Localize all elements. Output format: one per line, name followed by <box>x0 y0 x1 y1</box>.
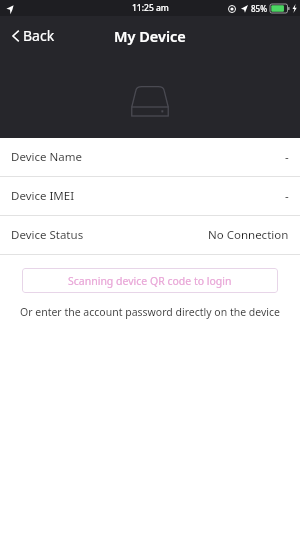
staticText: Back <box>23 26 55 45</box>
button[interactable]: Scanning device QR code to login <box>22 268 278 293</box>
button[interactable]: Device Status <box>0 216 300 254</box>
staticText: My Device <box>114 26 186 46</box>
button[interactable]: Back <box>6 22 61 49</box>
button[interactable]: Device Name <box>0 138 300 176</box>
staticText: No Connection <box>208 227 289 243</box>
staticText: Device Name <box>11 149 82 165</box>
staticText: - <box>285 188 289 204</box>
staticText: 85% <box>251 3 267 14</box>
other: Device <box>131 86 169 116</box>
staticText: Scanning device QR code to login <box>68 274 232 288</box>
staticText: Device Status <box>11 227 84 243</box>
staticText: Device IMEI <box>11 188 75 204</box>
staticText: 11:25 am <box>132 2 169 14</box>
staticText: - <box>285 149 289 165</box>
staticText: Or enter the account password directly o… <box>0 305 300 319</box>
button[interactable]: Device IMEI <box>0 177 300 215</box>
